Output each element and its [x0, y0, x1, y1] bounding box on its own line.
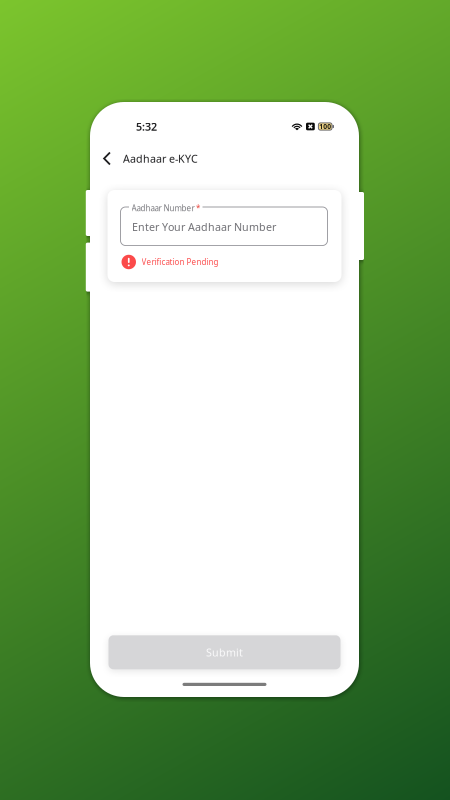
button[interactable]: Back	[96, 146, 118, 170]
staticText: 100	[319, 122, 331, 131]
staticText: Aadhaar Number	[131, 203, 194, 213]
staticText: Submit	[206, 645, 243, 659]
button[interactable]: Aadhaar Number	[120, 202, 327, 245]
staticText: 5:32	[136, 119, 157, 134]
staticText: Verification Pending	[141, 257, 218, 267]
staticText: Enter Your Aadhaar Number	[132, 220, 276, 234]
button[interactable]: Submit	[108, 635, 340, 669]
staticText: Aadhaar e-KYC	[123, 151, 198, 166]
staticText: *	[196, 203, 200, 213]
